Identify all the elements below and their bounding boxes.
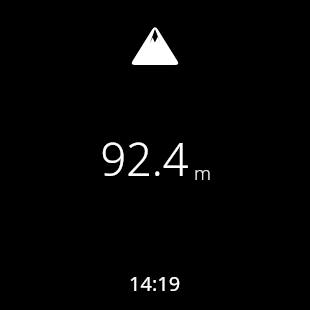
staticText: m: [194, 160, 211, 186]
button[interactable]: 14:19: [123, 268, 187, 299]
staticText: 14:19: [129, 270, 181, 297]
button[interactable]: 92.4: [100, 128, 211, 189]
staticText: 92.4: [100, 128, 189, 189]
button[interactable]: Altitude: [130, 25, 180, 65]
